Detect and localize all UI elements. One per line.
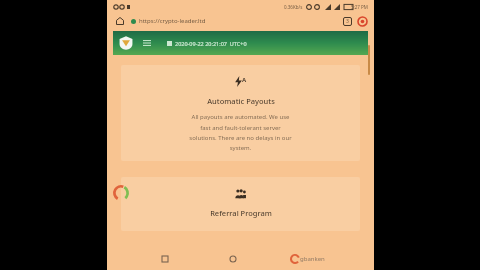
button[interactable]: Site logo: [119, 36, 133, 50]
button[interactable]: Menu: [357, 16, 367, 26]
button[interactable]: Recents: [156, 250, 174, 268]
staticText: A: [242, 76, 247, 84]
button[interactable]: A: [121, 65, 360, 161]
staticText: Automatic Payouts: [207, 96, 275, 106]
button[interactable]: Open menu: [141, 37, 153, 49]
staticText: https://crypto-leader.ltd: [139, 17, 206, 25]
button[interactable]: Referral Program: [121, 177, 360, 231]
button[interactable]: https://crypto-leader.ltd: [131, 15, 339, 27]
staticText: 5:27 PM: [351, 4, 368, 10]
staticText: Referral Program: [210, 208, 272, 218]
button[interactable]: gbanken: [291, 255, 325, 263]
staticText: gbanken: [300, 255, 325, 263]
button[interactable]: Tabs: [343, 17, 352, 26]
button[interactable]: Home: [114, 15, 126, 27]
staticText: All payouts are automated. We use fast a…: [189, 113, 292, 152]
staticText: 3: [346, 18, 349, 25]
staticText: 2020-09-22 20:21:07 UTC+0: [175, 40, 247, 47]
staticText: 0.36Kb/s: [284, 4, 303, 10]
button[interactable]: Home: [224, 250, 242, 268]
